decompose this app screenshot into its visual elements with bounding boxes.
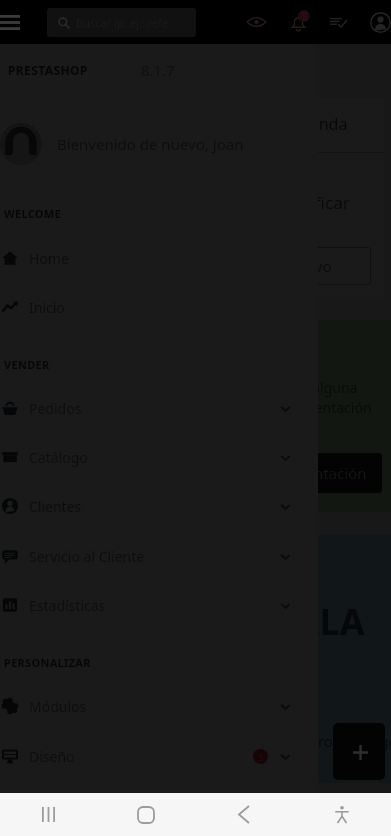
staticText: 5 xyxy=(302,11,307,22)
button[interactable]: Back xyxy=(195,793,293,836)
staticText: VENDER xyxy=(4,357,50,372)
staticText: Servicio al Cliente xyxy=(29,547,145,566)
staticText: Catálogo xyxy=(29,448,88,467)
button[interactable]: Ir a la documentación xyxy=(204,453,382,493)
staticText: No dudes en consultar alguna xyxy=(160,378,358,397)
staticText: Bienvenido de nuevo, Joan xyxy=(57,134,244,154)
staticText: Pedidos xyxy=(29,399,82,418)
staticText: Estadísticas xyxy=(29,596,106,615)
button[interactable]: Open menu xyxy=(0,0,47,44)
button[interactable]: Account xyxy=(368,0,391,44)
button[interactable]: Notifications xyxy=(278,0,318,44)
staticText: Clientes xyxy=(29,497,82,516)
staticText: Accede a nuestro catálogo xyxy=(212,731,391,751)
button[interactable]: Recent apps xyxy=(0,793,97,836)
button[interactable]: Bienvenido de nuevo, Joan xyxy=(0,122,318,166)
staticText: de nuestra documentación xyxy=(195,398,372,417)
button[interactable]: Tasks xyxy=(318,0,358,44)
staticText: Diseño xyxy=(29,747,75,766)
staticText: Ir a la documentación xyxy=(213,463,367,483)
staticText: Módulos xyxy=(29,697,87,716)
button[interactable]: Accessibility xyxy=(293,793,391,836)
button[interactable]: Add xyxy=(333,723,385,780)
button[interactable]: Preview store xyxy=(236,0,276,44)
staticText: WELCOME xyxy=(4,206,61,221)
button[interactable]: Home xyxy=(97,793,195,836)
staticText: 3 xyxy=(258,751,264,763)
staticText: PRESTASHOP xyxy=(8,62,88,78)
staticText: PLANTILLA xyxy=(168,597,365,646)
staticText: Inicio xyxy=(29,298,65,317)
staticText: Home xyxy=(29,249,69,268)
staticText: PERSONALIZAR xyxy=(4,655,91,670)
